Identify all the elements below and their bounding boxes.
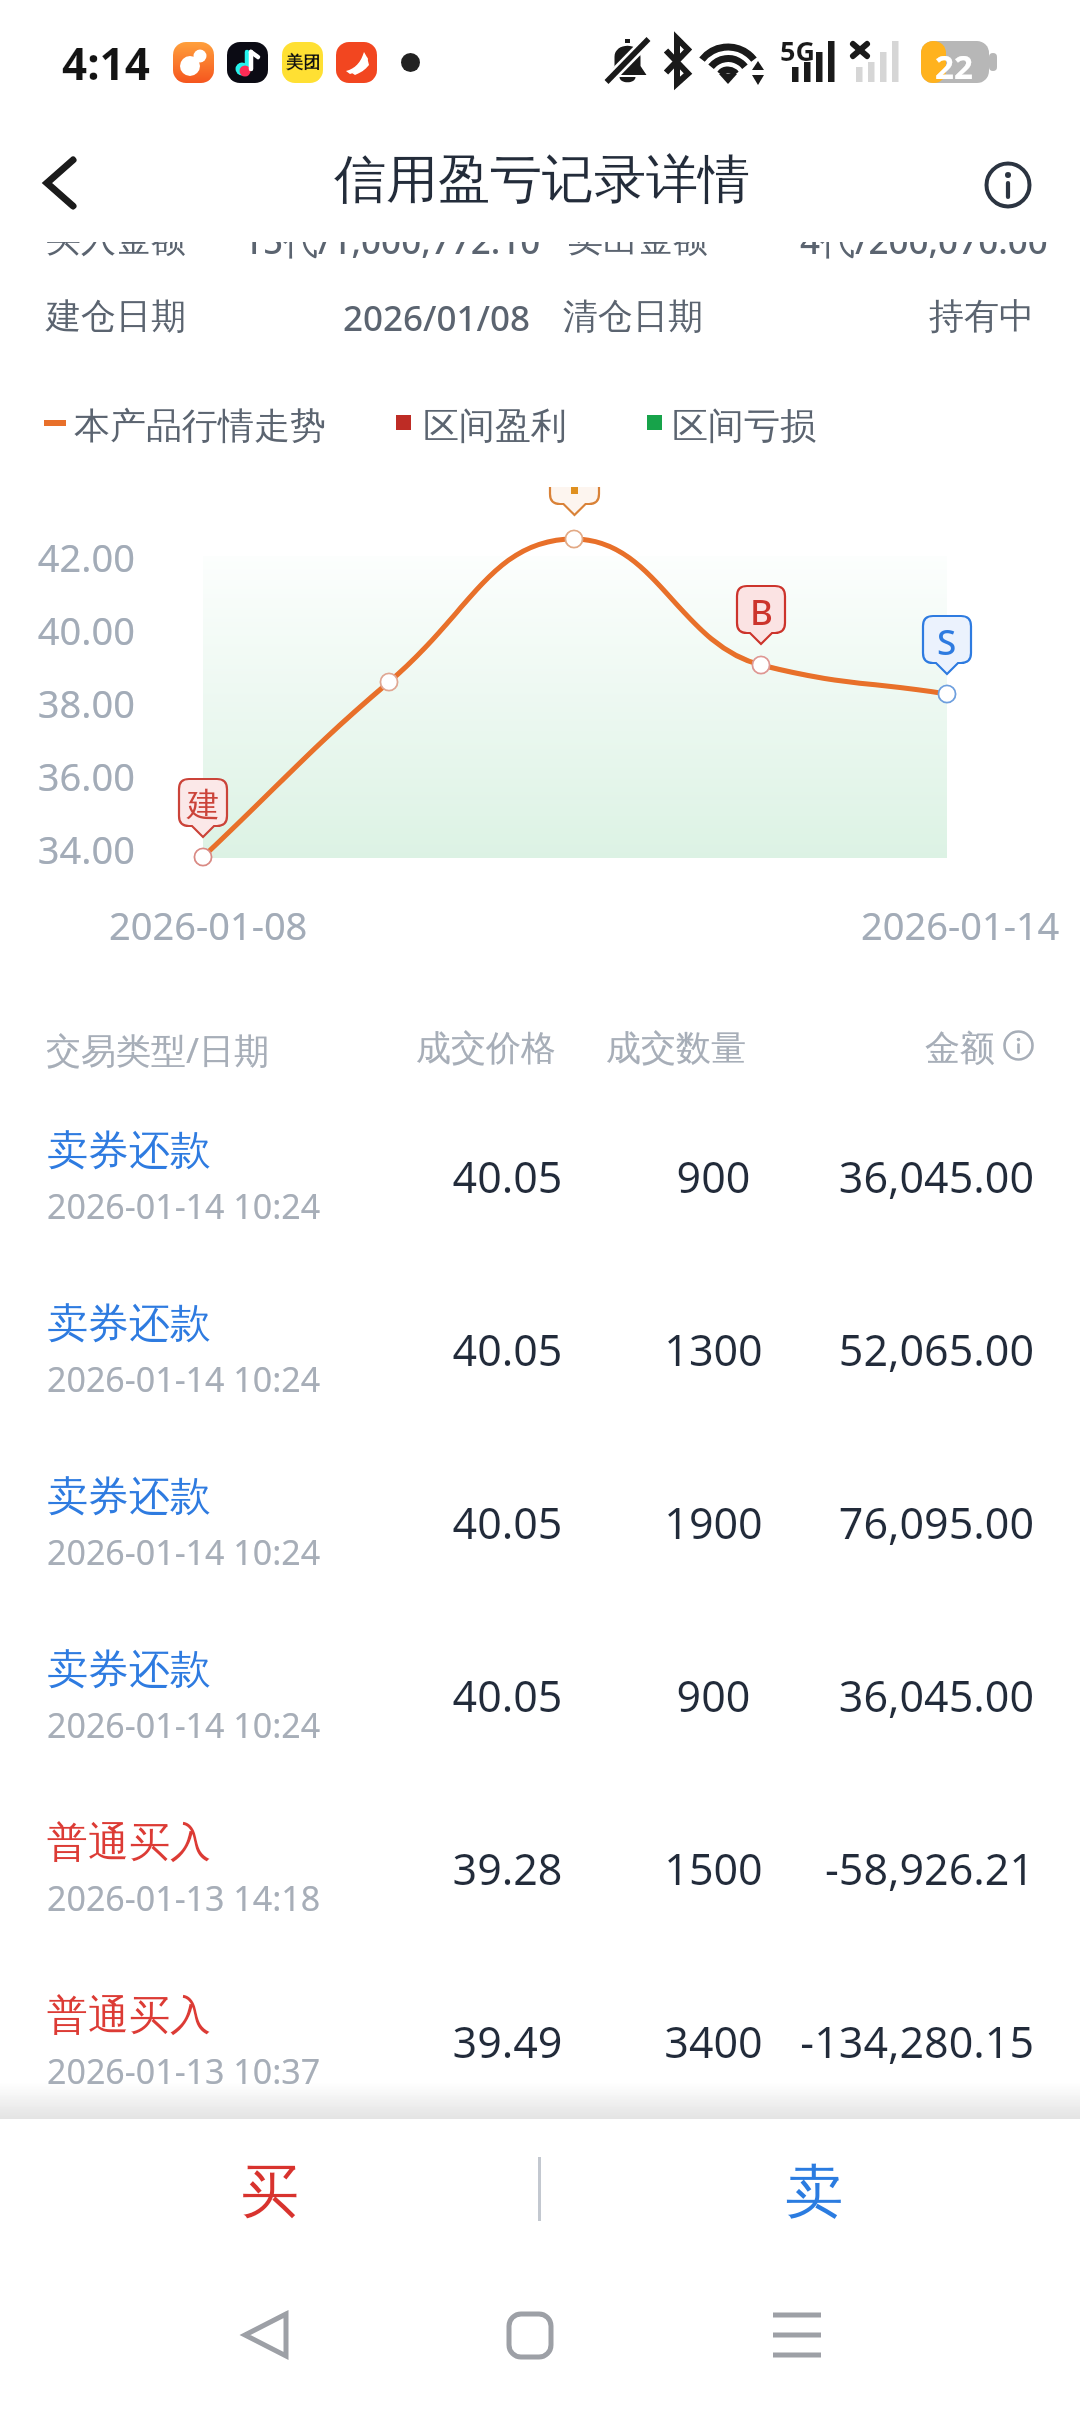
staticText: 成交数量 bbox=[606, 1026, 746, 1070]
staticText: 15代/1,000,772.10 bbox=[243, 242, 541, 265]
staticText: 买入金额 bbox=[46, 242, 186, 261]
staticText: 40.00 bbox=[0, 604, 135, 656]
staticText: 40.05 bbox=[400, 1320, 615, 1379]
staticText: 39.49 bbox=[400, 2012, 615, 2071]
staticText: 22 bbox=[935, 44, 973, 89]
staticText: 1300 bbox=[586, 1320, 841, 1379]
button[interactable]: Amount info bbox=[1003, 1030, 1034, 1061]
staticText: 2026-01-13 14:18 bbox=[47, 1875, 321, 1921]
button[interactable]: Recents bbox=[742, 2282, 852, 2392]
staticText: 交易类型/日期 bbox=[46, 1026, 270, 1074]
staticText: 1900 bbox=[586, 1493, 841, 1552]
staticText: 清仓日期 bbox=[563, 294, 703, 338]
staticText: -58,926.21 bbox=[700, 1839, 1034, 1898]
staticText: 52,065.00 bbox=[700, 1320, 1034, 1379]
staticText: 40.05 bbox=[400, 1493, 615, 1552]
staticText: 卖出金额 bbox=[568, 242, 708, 261]
staticText: 40.05 bbox=[400, 1666, 615, 1725]
staticText: 美团 bbox=[286, 52, 320, 73]
button[interactable]: Back bbox=[18, 138, 110, 230]
staticText: 区间盈利 bbox=[423, 403, 567, 448]
staticText: 900 bbox=[586, 1147, 841, 1206]
staticText: 2026-01-14 bbox=[861, 899, 1060, 951]
staticText: 卖券还款 bbox=[47, 1125, 211, 1177]
staticText: 900 bbox=[586, 1666, 841, 1725]
button[interactable]: 卖券还款 bbox=[0, 1100, 1080, 1273]
staticText: 卖 bbox=[785, 2155, 843, 2228]
button[interactable]: 普通买入 bbox=[0, 1792, 1080, 1965]
staticText: 2026-01-13 10:37 bbox=[47, 2048, 321, 2090]
staticText: 36,045.00 bbox=[700, 1666, 1034, 1725]
button[interactable]: 卖券还款 bbox=[0, 1273, 1080, 1446]
staticText: 5G bbox=[780, 32, 815, 69]
staticText: 普通买入 bbox=[47, 1990, 211, 2042]
button[interactable]: 卖 bbox=[540, 2119, 1080, 2282]
staticText: 34.00 bbox=[0, 823, 135, 875]
staticText: 2026-01-14 10:24 bbox=[47, 1183, 321, 1229]
staticText: 建 bbox=[187, 784, 220, 826]
button[interactable]: 普通买入 bbox=[0, 1965, 1080, 2090]
staticText: 40.05 bbox=[400, 1147, 615, 1206]
staticText: 成交价格 bbox=[416, 1026, 556, 1070]
button[interactable]: 买 bbox=[0, 2119, 540, 2282]
staticText: 信用盈亏记录详情 bbox=[334, 147, 750, 213]
staticText: S bbox=[937, 618, 957, 666]
staticText: 区间亏损 bbox=[672, 403, 816, 448]
button[interactable]: Back bbox=[210, 2282, 320, 2392]
staticText: 本产品行情走势 bbox=[74, 403, 326, 448]
button[interactable]: Home bbox=[475, 2282, 585, 2392]
staticText: 39.28 bbox=[400, 1839, 615, 1898]
staticText: 2026-01-14 10:24 bbox=[47, 1529, 321, 1575]
button[interactable]: Info bbox=[968, 145, 1048, 225]
staticText: 卖券还款 bbox=[47, 1298, 211, 1350]
staticText: 建仓日期 bbox=[46, 294, 186, 338]
staticText: 卖券还款 bbox=[47, 1471, 211, 1523]
staticText: 2026-01-08 bbox=[109, 899, 308, 951]
staticText: 金额 bbox=[925, 1026, 995, 1070]
staticText: 3400 bbox=[586, 2012, 841, 2071]
staticText: 1500 bbox=[586, 1839, 841, 1898]
staticText: -134,280.15 bbox=[700, 2012, 1034, 2071]
staticText: 持有中 bbox=[929, 294, 1034, 338]
staticText: 76,095.00 bbox=[700, 1493, 1034, 1552]
staticText: 4:14 bbox=[62, 33, 150, 93]
staticText: 36.00 bbox=[0, 750, 135, 802]
staticText: 普通买入 bbox=[47, 1817, 211, 1869]
staticText: 买 bbox=[241, 2155, 299, 2228]
staticText: 4代/200,070.00 bbox=[800, 242, 1048, 265]
staticText: B bbox=[750, 588, 773, 636]
staticText: 2026-01-14 10:24 bbox=[47, 1702, 321, 1748]
button[interactable]: 卖券还款 bbox=[0, 1619, 1080, 1792]
staticText: 36,045.00 bbox=[700, 1147, 1034, 1206]
staticText: 卖券还款 bbox=[47, 1644, 211, 1696]
staticText: 2026/01/08 bbox=[343, 294, 531, 342]
staticText: 38.00 bbox=[0, 677, 135, 729]
staticText: 2026-01-14 10:24 bbox=[47, 1356, 321, 1402]
staticText: 42.00 bbox=[0, 531, 135, 583]
button[interactable]: 卖券还款 bbox=[0, 1446, 1080, 1619]
